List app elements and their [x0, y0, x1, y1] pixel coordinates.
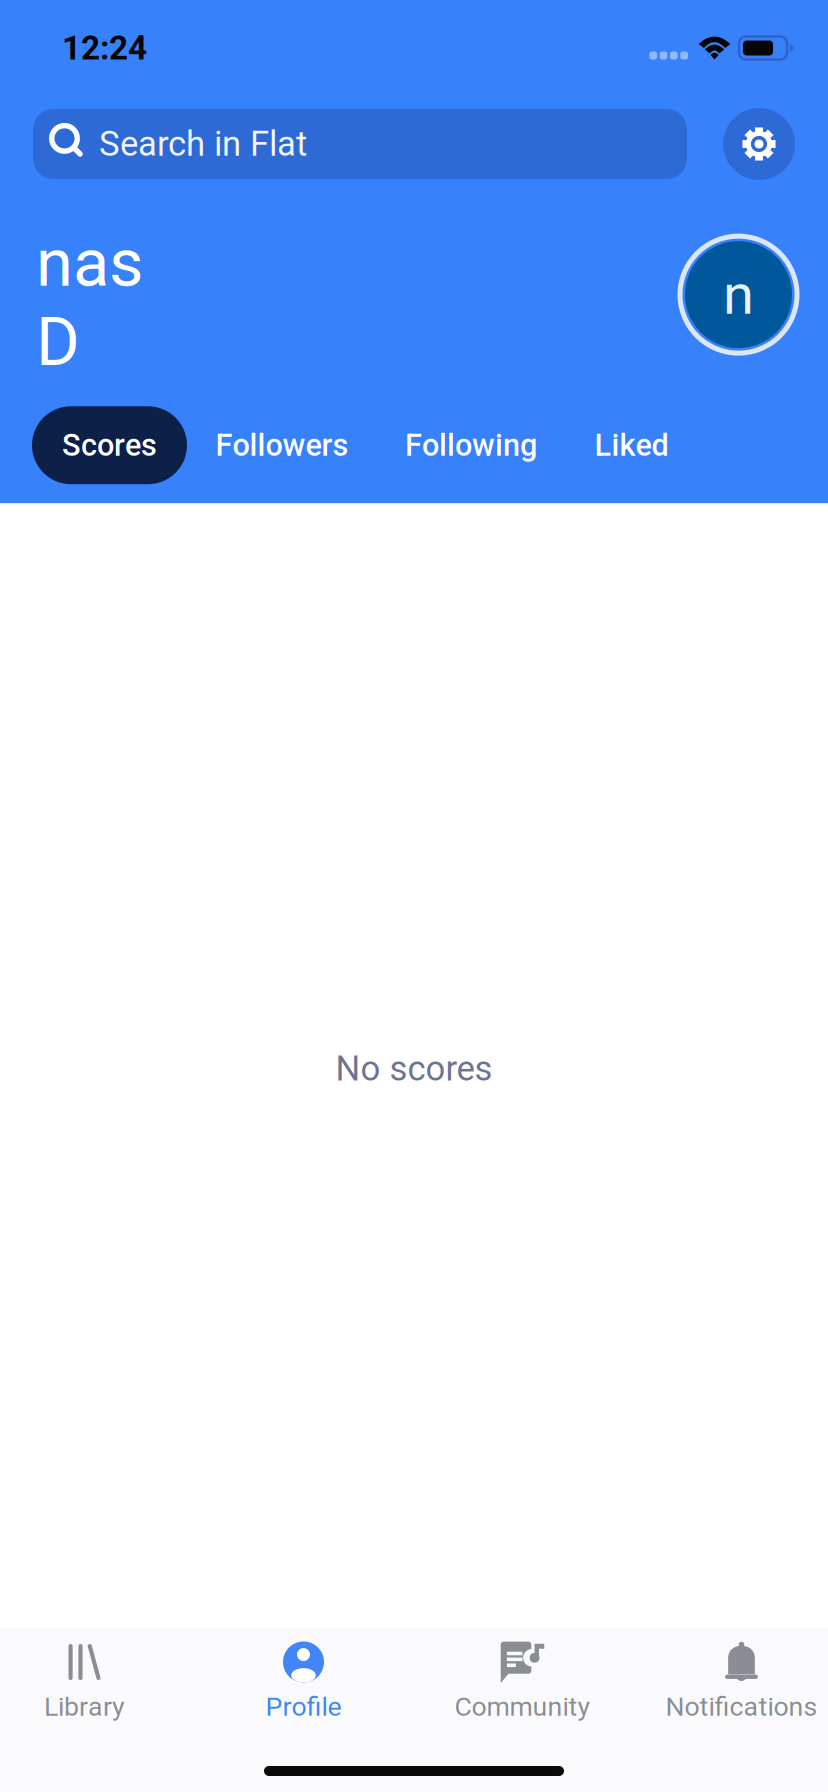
staticText: Notifications [665, 1691, 817, 1722]
staticText: Followers [215, 427, 348, 463]
button[interactable]: Profile [194, 1640, 413, 1716]
staticText: No scores [335, 1048, 492, 1089]
button[interactable]: Settings [723, 108, 795, 180]
button[interactable]: Liked [565, 406, 698, 484]
button[interactable]: Community [413, 1640, 632, 1716]
staticText: 12:24 [62, 28, 147, 68]
button[interactable]: Followers [187, 406, 377, 484]
button[interactable]: Notifications [632, 1640, 828, 1716]
staticText: Profile [265, 1691, 341, 1722]
button[interactable]: Scores [32, 406, 187, 484]
staticText: Community [454, 1691, 590, 1722]
staticText: nas [36, 224, 143, 302]
button[interactable]: Library [0, 1640, 194, 1716]
staticText: Liked [594, 427, 668, 463]
staticText: Library [44, 1691, 125, 1722]
staticText: n [723, 262, 754, 327]
button[interactable]: Following [377, 406, 565, 484]
staticText: Following [405, 427, 537, 463]
button[interactable]: Search in Flat [33, 109, 687, 179]
staticText: D [36, 303, 80, 381]
staticText: Scores [62, 427, 157, 463]
staticText: Search in Flat [99, 124, 307, 164]
